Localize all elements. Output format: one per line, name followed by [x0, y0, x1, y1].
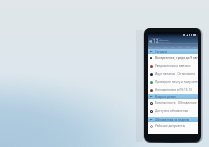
- button[interactable]: Доступно обновление системы: [148, 107, 198, 115]
- button[interactable]: Напоминание в 09:15-10: [148, 86, 198, 94]
- staticText: Проверьте почту и получите новые: [155, 80, 198, 84]
- staticText: 14°: [156, 45, 160, 48]
- button[interactable]: Уведомления о важных событиях: [148, 62, 198, 70]
- button[interactable]: Воскресенье, среда до 9 авг: [148, 54, 198, 62]
- button[interactable]: Вчера и ранее: [148, 94, 198, 99]
- staticText: 12°: [186, 45, 190, 48]
- staticText: Сегодня: [155, 50, 168, 54]
- staticText: 10°: [193, 45, 197, 48]
- staticText: 12: [153, 38, 159, 45]
- staticText: Доступно обновление системы: [155, 109, 198, 113]
- staticText: облачно: [159, 39, 169, 42]
- staticText: 15°: [178, 45, 182, 48]
- staticText: Идут занятия Остановить: [155, 72, 196, 76]
- staticText: 12°: [149, 45, 153, 48]
- button[interactable]: Идут занятия Остановить: [148, 70, 198, 78]
- staticText: 13°: [171, 45, 175, 48]
- staticText: Воскресенье, среда до 9 авг: [155, 56, 198, 60]
- staticText: ветер 3 м/с: [159, 41, 171, 44]
- staticText: Москва: [151, 36, 160, 39]
- staticText: Напоминание в 09:15-10: [155, 88, 192, 92]
- button[interactable]: Обновления за неделю: [148, 117, 198, 122]
- staticText: 11°: [164, 45, 168, 48]
- staticText: Безопасность Обновление: [155, 101, 197, 105]
- button[interactable]: Сегодня: [148, 49, 198, 54]
- button[interactable]: Проверьте почту и получите новые: [148, 78, 198, 86]
- staticText: Обновления за неделю: [155, 118, 190, 122]
- staticText: Рабочие документы доступно: [155, 124, 198, 128]
- staticText: Вчера и ранее: [155, 95, 176, 99]
- staticText: Уведомления о важных событиях: [155, 64, 198, 68]
- button[interactable]: Безопасность Обновление: [148, 99, 198, 107]
- button[interactable]: Рабочие документы доступно: [148, 122, 198, 130]
